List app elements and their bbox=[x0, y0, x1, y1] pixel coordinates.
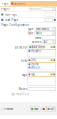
button[interactable]: Page bbox=[0, 1, 10, 6]
staticText: Preview bbox=[4, 107, 13, 111]
staticText: Tag bbox=[31, 73, 35, 76]
button[interactable]: Sections bbox=[10, 1, 26, 6]
staticText: Pages bbox=[1, 7, 9, 11]
staticText: Name bbox=[35, 36, 42, 39]
button[interactable]: Save bbox=[30, 106, 40, 111]
button[interactable]: Load Page bbox=[0, 17, 57, 22]
staticText: Page Configuration bbox=[1, 23, 29, 27]
staticText: URL bbox=[31, 58, 36, 62]
staticText: Cancel bbox=[45, 107, 54, 111]
staticText: Sections bbox=[14, 2, 25, 5]
staticText: Type bbox=[28, 27, 34, 31]
staticText: All bbox=[43, 40, 47, 44]
staticText: Header bbox=[31, 49, 41, 53]
staticText: Untitled bbox=[29, 7, 41, 11]
staticText: Tags bbox=[22, 73, 27, 77]
staticText: Home bbox=[31, 62, 39, 66]
staticText: Load Page bbox=[4, 18, 18, 22]
staticText: Section bbox=[32, 40, 42, 44]
button[interactable]: Preview bbox=[1, 107, 13, 111]
staticText: Links bbox=[21, 59, 27, 62]
button[interactable]: Edit bbox=[51, 59, 52, 61]
staticText: Last modified bbox=[11, 92, 29, 96]
staticText: Save bbox=[34, 107, 39, 111]
staticText: Add Item bbox=[31, 45, 44, 49]
button[interactable]: Add bbox=[53, 46, 55, 48]
staticText: New Empty bbox=[35, 27, 48, 31]
button[interactable]: New Page bbox=[0, 12, 57, 17]
staticText: About bbox=[31, 66, 40, 69]
button[interactable]: Cancel bbox=[42, 106, 56, 111]
staticText: Page bbox=[2, 2, 9, 5]
staticText: Elements bbox=[15, 46, 27, 49]
button[interactable]: Add bbox=[53, 73, 55, 75]
button[interactable]: Add bbox=[53, 59, 55, 61]
staticText: Style bbox=[28, 31, 34, 35]
staticText: New Page bbox=[4, 13, 17, 16]
staticText: Notes bbox=[19, 87, 27, 91]
button[interactable]: Add Item bbox=[28, 45, 45, 49]
staticText: Table bbox=[35, 31, 42, 35]
